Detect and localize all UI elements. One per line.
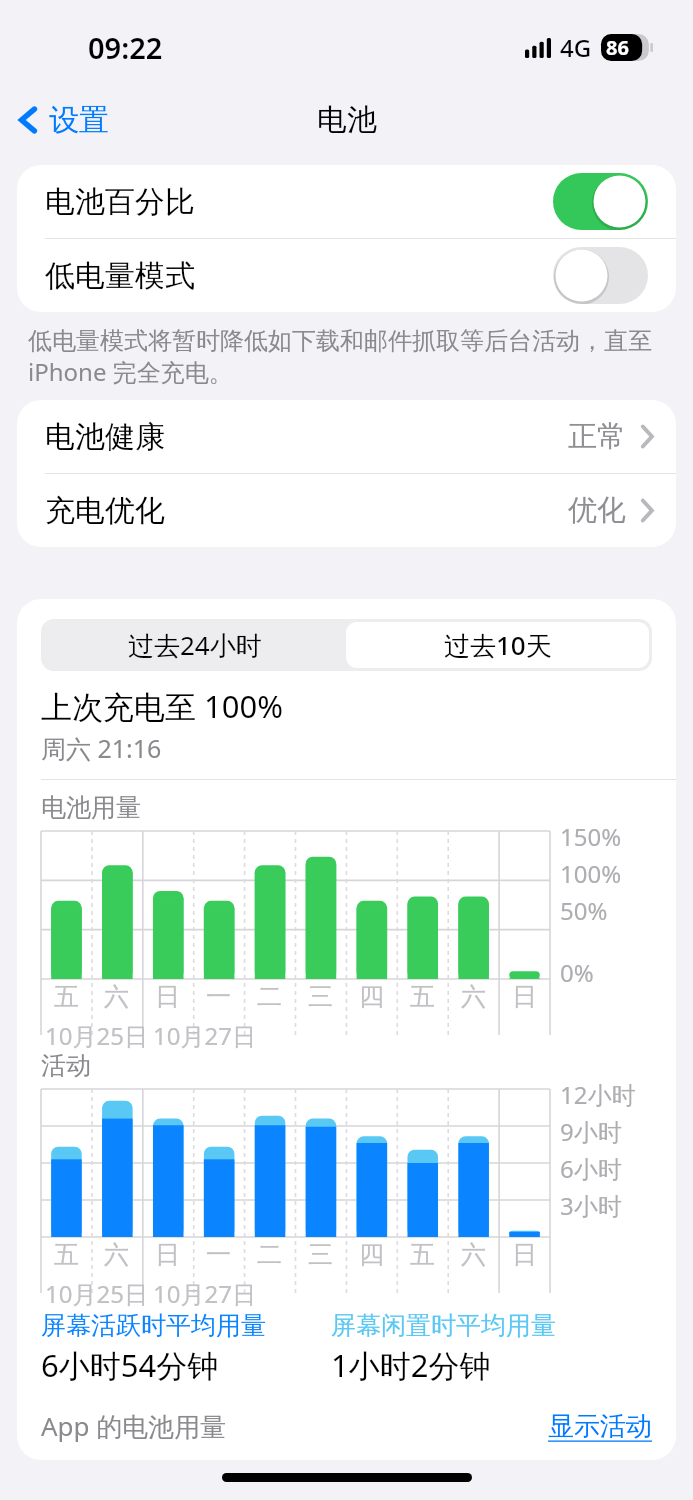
staticText: 三 [308,981,333,1012]
staticText: 设置 [49,101,109,139]
staticText: 显示活动 [548,1410,652,1443]
staticText: 电池用量 [41,792,141,823]
button[interactable]: 电池健康 [17,400,676,473]
staticText: 低电量模式 [45,257,195,295]
staticText: 86 [606,34,629,61]
staticText: 六 [461,1239,486,1270]
button[interactable]: 充电优化 [17,474,676,547]
button[interactable]: App 的电池用量 [17,1408,676,1460]
staticText: 10月27日 [153,1277,256,1310]
staticText: 电池 [317,101,377,139]
staticText: 6小时54分钟 [41,1344,219,1386]
staticText: 150% [560,820,622,853]
staticText: 9小时 [560,1115,622,1148]
staticText: 10月27日 [153,1019,256,1052]
staticText: 100% [560,857,622,890]
staticText: 屏幕闲置时平均用量 [331,1310,556,1341]
staticText: 日 [512,1239,537,1270]
staticText: 四 [359,1239,384,1270]
staticText: 电池百分比 [45,183,195,221]
staticText: 10月25日 [45,1277,148,1310]
staticText: 过去24小时 [128,627,262,663]
staticText: 日 [155,981,180,1012]
staticText: 日 [512,981,537,1012]
staticText: 日 [155,1239,180,1270]
staticText: 一 [206,1239,231,1270]
staticText: 上次充电至 100% [41,685,284,727]
button[interactable]: 过去10天 [346,622,649,668]
button[interactable] [553,247,648,304]
staticText: 五 [54,981,79,1012]
staticText: 六 [461,981,486,1012]
button[interactable]: 设置 [0,95,121,145]
staticText: 三 [308,1239,333,1270]
staticText: 电池健康 [45,418,165,456]
button[interactable]: 电池百分比 [17,165,676,238]
staticText: 活动 [41,1050,91,1081]
button[interactable] [553,173,648,230]
staticText: 五 [54,1239,79,1270]
staticText: 6小时 [560,1152,622,1185]
staticText: 1小时2分钟 [331,1344,491,1386]
staticText: 09:22 [88,28,163,67]
staticText: 六 [104,981,129,1012]
staticText: 六 [104,1239,129,1270]
staticText: App 的电池用量 [41,1408,227,1444]
staticText: 二 [257,1239,282,1270]
button[interactable]: 低电量模式 [17,239,676,312]
button[interactable]: 过去24小时 [44,622,346,668]
staticText: 低电量模式将暂时降低如下载和邮件抓取等后台活动，直至 iPhone 完全充电。 [28,326,652,388]
staticText: 正常 [568,418,626,455]
staticText: 四 [359,981,384,1012]
staticText: 12小时 [560,1078,636,1111]
staticText: 二 [257,981,282,1012]
staticText: 10月25日 [45,1019,148,1052]
staticText: 优化 [568,492,626,529]
staticText: 过去10天 [444,627,552,663]
staticText: 屏幕活跃时平均用量 [41,1310,266,1341]
staticText: 充电优化 [45,492,165,530]
staticText: 3小时 [560,1189,622,1222]
staticText: 五 [410,1239,435,1270]
staticText: 50% [560,894,608,927]
staticText: 一 [206,981,231,1012]
staticText: 周六 21:16 [41,731,162,765]
staticText: 4G [560,31,592,64]
staticText: 五 [410,981,435,1012]
staticText: 0% [560,956,594,989]
